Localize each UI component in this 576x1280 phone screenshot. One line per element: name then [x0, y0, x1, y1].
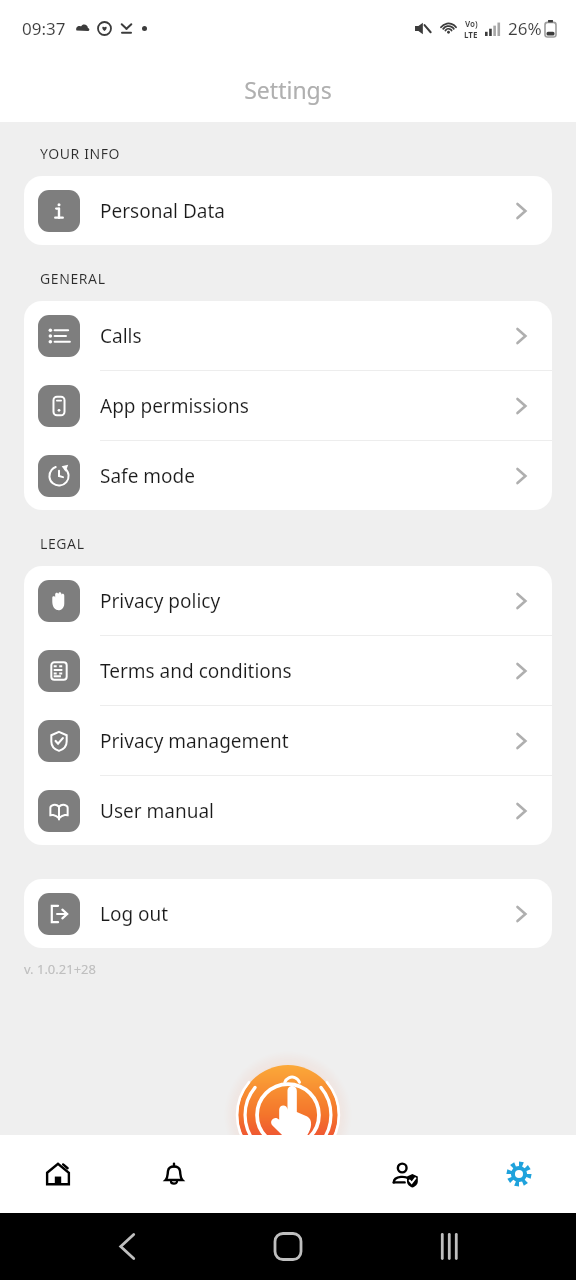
- staticText: Privacy policy: [100, 588, 510, 614]
- staticText: v. 1.0.21+28: [24, 960, 96, 978]
- staticText: Calls: [100, 323, 510, 349]
- button[interactable]: Profile: [346, 1135, 461, 1213]
- button[interactable]: Settings: [461, 1135, 576, 1213]
- staticText: User manual: [100, 798, 510, 824]
- button[interactable]: Emergency touch button: [224, 1051, 352, 1179]
- button[interactable]: Personal Data: [24, 176, 552, 245]
- button[interactable]: Privacy management: [24, 706, 552, 776]
- staticText: Log out: [100, 901, 510, 927]
- staticText: LTE: [464, 29, 478, 40]
- staticText: 26%: [508, 17, 542, 40]
- staticText: Safe mode: [100, 463, 510, 489]
- button[interactable]: Notifications: [116, 1135, 231, 1213]
- staticText: LEGAL: [40, 534, 85, 553]
- button[interactable]: Calls: [24, 301, 552, 371]
- button[interactable]: Log out: [24, 879, 552, 948]
- button[interactable]: Privacy policy: [24, 566, 552, 636]
- button[interactable]: Safe mode: [24, 441, 552, 510]
- staticText: Settings: [244, 74, 332, 105]
- staticText: 09:37: [22, 17, 66, 40]
- staticText: Personal Data: [100, 198, 510, 224]
- staticText: Vo): [465, 18, 478, 29]
- button[interactable]: App permissions: [24, 371, 552, 441]
- button[interactable]: Terms and conditions: [24, 636, 552, 706]
- button[interactable]: User manual: [24, 776, 552, 845]
- button[interactable]: Home: [0, 1135, 116, 1213]
- staticText: Privacy management: [100, 728, 510, 754]
- staticText: YOUR INFO: [40, 144, 121, 163]
- staticText: App permissions: [100, 393, 510, 419]
- staticText: Terms and conditions: [100, 658, 510, 684]
- staticText: GENERAL: [40, 269, 106, 288]
